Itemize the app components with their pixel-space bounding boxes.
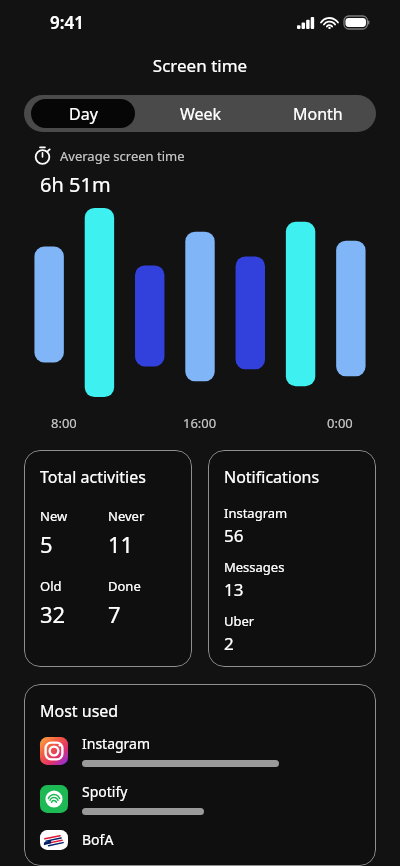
staticText: Most used (40, 700, 119, 722)
staticText: Average screen time (60, 147, 185, 165)
staticText: Month (293, 103, 343, 125)
staticText: Never (108, 507, 145, 525)
staticText: New (40, 507, 68, 525)
other: Spotify (40, 785, 68, 813)
staticText: 7 (108, 599, 121, 629)
staticText: 16:00 (183, 414, 217, 432)
other: BofA (40, 830, 68, 850)
button[interactable]: Spotify (40, 782, 360, 815)
staticText: Done (108, 577, 141, 595)
button[interactable]: Instagram (40, 734, 360, 767)
staticText: Uber (224, 612, 255, 630)
staticText: 2 (224, 632, 234, 651)
button[interactable]: Month (259, 95, 376, 132)
staticText: Total activities (40, 466, 146, 488)
button[interactable]: Day (31, 99, 135, 128)
staticText: 11 (108, 529, 134, 559)
staticText: Week (180, 103, 222, 125)
staticText: Old (40, 577, 62, 595)
staticText: Screen time (0, 54, 400, 77)
staticText: BofA (82, 830, 114, 849)
staticText: 5 (40, 529, 53, 559)
staticText: 6h 51m (40, 171, 111, 198)
staticText: 32 (40, 599, 66, 629)
staticText: 56 (224, 524, 244, 547)
staticText: Instagram (224, 504, 288, 522)
staticText: 9:41 (50, 11, 84, 34)
staticText: Day (69, 103, 98, 125)
staticText: 13 (224, 578, 244, 601)
staticText: 0:00 (327, 414, 353, 432)
button[interactable]: Total activities (24, 450, 192, 667)
other: Stopwatch (33, 146, 52, 165)
button[interactable]: Most used (24, 684, 376, 866)
button[interactable]: Week (142, 95, 259, 132)
button[interactable]: Notifications (208, 450, 376, 667)
staticText: Notifications (224, 466, 320, 488)
staticText: Instagram (82, 734, 151, 753)
button[interactable]: BofA (40, 830, 360, 850)
staticText: 8:00 (51, 414, 77, 432)
staticText: Messages (224, 558, 285, 576)
staticText: Spotify (82, 782, 128, 801)
other: Instagram (40, 737, 68, 765)
